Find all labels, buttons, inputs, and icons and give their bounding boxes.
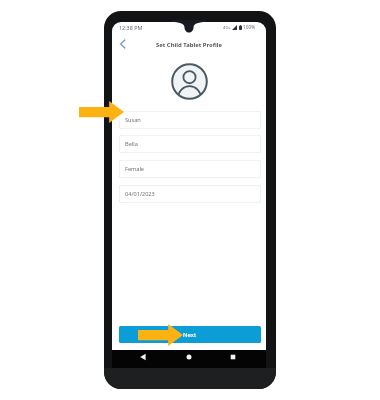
staticText: 4G+ (223, 25, 231, 31)
staticText: 12:38 PM (119, 24, 143, 31)
button[interactable]: 04/01/2023 (119, 185, 261, 203)
staticText: 100% (243, 24, 256, 31)
button[interactable]: Next (119, 326, 261, 343)
staticText: Set Child Tablet Profile (156, 41, 222, 49)
button[interactable]: Susan (119, 111, 261, 129)
button[interactable]: Back (116, 37, 130, 51)
button[interactable]: Home (184, 352, 194, 362)
staticText: Susan (125, 116, 141, 124)
button[interactable]: Bella (119, 135, 261, 153)
staticText: Female (125, 165, 145, 173)
button[interactable]: Recents (228, 352, 238, 362)
button[interactable]: Back (138, 352, 148, 362)
button[interactable]: Female (119, 160, 261, 178)
staticText: Bella (125, 140, 138, 148)
staticText: 04/01/2023 (125, 190, 155, 198)
staticText: Next (183, 331, 197, 339)
